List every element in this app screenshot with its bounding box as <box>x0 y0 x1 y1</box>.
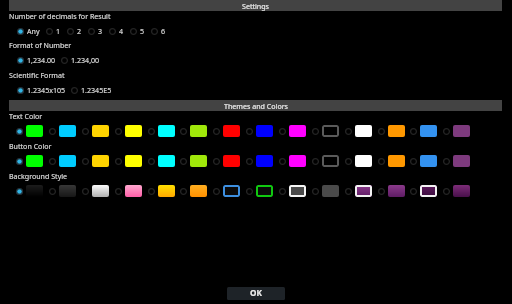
staticText: 4 <box>119 26 124 36</box>
button[interactable]: 1,234.00 <box>16 55 56 65</box>
staticText: 1 <box>56 26 61 36</box>
button[interactable] <box>245 155 273 167</box>
button[interactable] <box>179 185 207 197</box>
staticText: Number of decimals for Result <box>9 11 111 21</box>
staticText: Settings <box>242 1 269 11</box>
button[interactable]: 2 <box>66 26 82 36</box>
button[interactable] <box>179 125 207 137</box>
staticText: Scientific Format <box>9 70 65 80</box>
button[interactable] <box>344 185 372 197</box>
staticText: Any <box>27 26 40 36</box>
button[interactable] <box>344 155 372 167</box>
button[interactable] <box>377 125 405 137</box>
button[interactable] <box>48 155 76 167</box>
button[interactable] <box>278 185 306 197</box>
button[interactable] <box>344 125 372 137</box>
button[interactable] <box>81 125 109 137</box>
button[interactable]: 1.2345x105 <box>16 85 66 95</box>
staticText: 3 <box>98 26 103 36</box>
button[interactable]: 4 <box>108 26 124 36</box>
staticText: Format of Number <box>9 40 72 50</box>
button[interactable] <box>409 125 437 137</box>
staticText: Background Style <box>9 171 68 181</box>
button[interactable] <box>377 185 405 197</box>
button[interactable] <box>147 155 175 167</box>
staticText: Themes and Colors <box>224 101 288 111</box>
button[interactable] <box>212 155 240 167</box>
button[interactable] <box>409 155 437 167</box>
staticText: 1,234.00 <box>27 55 56 65</box>
button[interactable]: 3 <box>87 26 103 36</box>
staticText: Text Color <box>9 111 43 121</box>
button[interactable] <box>278 155 306 167</box>
button[interactable]: 6 <box>150 26 166 36</box>
button[interactable] <box>311 185 339 197</box>
button[interactable] <box>147 185 175 197</box>
button[interactable] <box>212 185 240 197</box>
button[interactable] <box>81 155 109 167</box>
button[interactable] <box>15 185 43 197</box>
button[interactable] <box>15 125 43 137</box>
button[interactable] <box>377 155 405 167</box>
button[interactable] <box>114 125 142 137</box>
staticText: OK <box>250 287 262 298</box>
button[interactable] <box>48 125 76 137</box>
staticText: 1.2345x105 <box>27 85 66 95</box>
button[interactable] <box>245 125 273 137</box>
staticText: 1.2345E5 <box>81 85 112 95</box>
button[interactable] <box>114 185 142 197</box>
button[interactable] <box>409 185 437 197</box>
staticText: 6 <box>161 26 166 36</box>
staticText: 2 <box>77 26 82 36</box>
button[interactable] <box>179 155 207 167</box>
button[interactable]: OK <box>227 287 285 300</box>
button[interactable] <box>278 125 306 137</box>
staticText: Button Color <box>9 141 52 151</box>
staticText: 5 <box>140 26 145 36</box>
button[interactable] <box>245 185 273 197</box>
button[interactable]: 5 <box>129 26 145 36</box>
button[interactable] <box>442 185 470 197</box>
button[interactable] <box>15 155 43 167</box>
button[interactable] <box>442 155 470 167</box>
button[interactable] <box>311 155 339 167</box>
button[interactable] <box>147 125 175 137</box>
button[interactable] <box>311 125 339 137</box>
button[interactable]: 1.234,00 <box>60 55 100 65</box>
button[interactable] <box>442 125 470 137</box>
staticText: 1.234,00 <box>71 55 100 65</box>
button[interactable]: Any <box>16 26 40 36</box>
button[interactable] <box>114 155 142 167</box>
button[interactable]: 1.2345E5 <box>70 85 112 95</box>
button[interactable] <box>81 185 109 197</box>
button[interactable]: 1 <box>45 26 61 36</box>
button[interactable] <box>48 185 76 197</box>
button[interactable] <box>212 125 240 137</box>
